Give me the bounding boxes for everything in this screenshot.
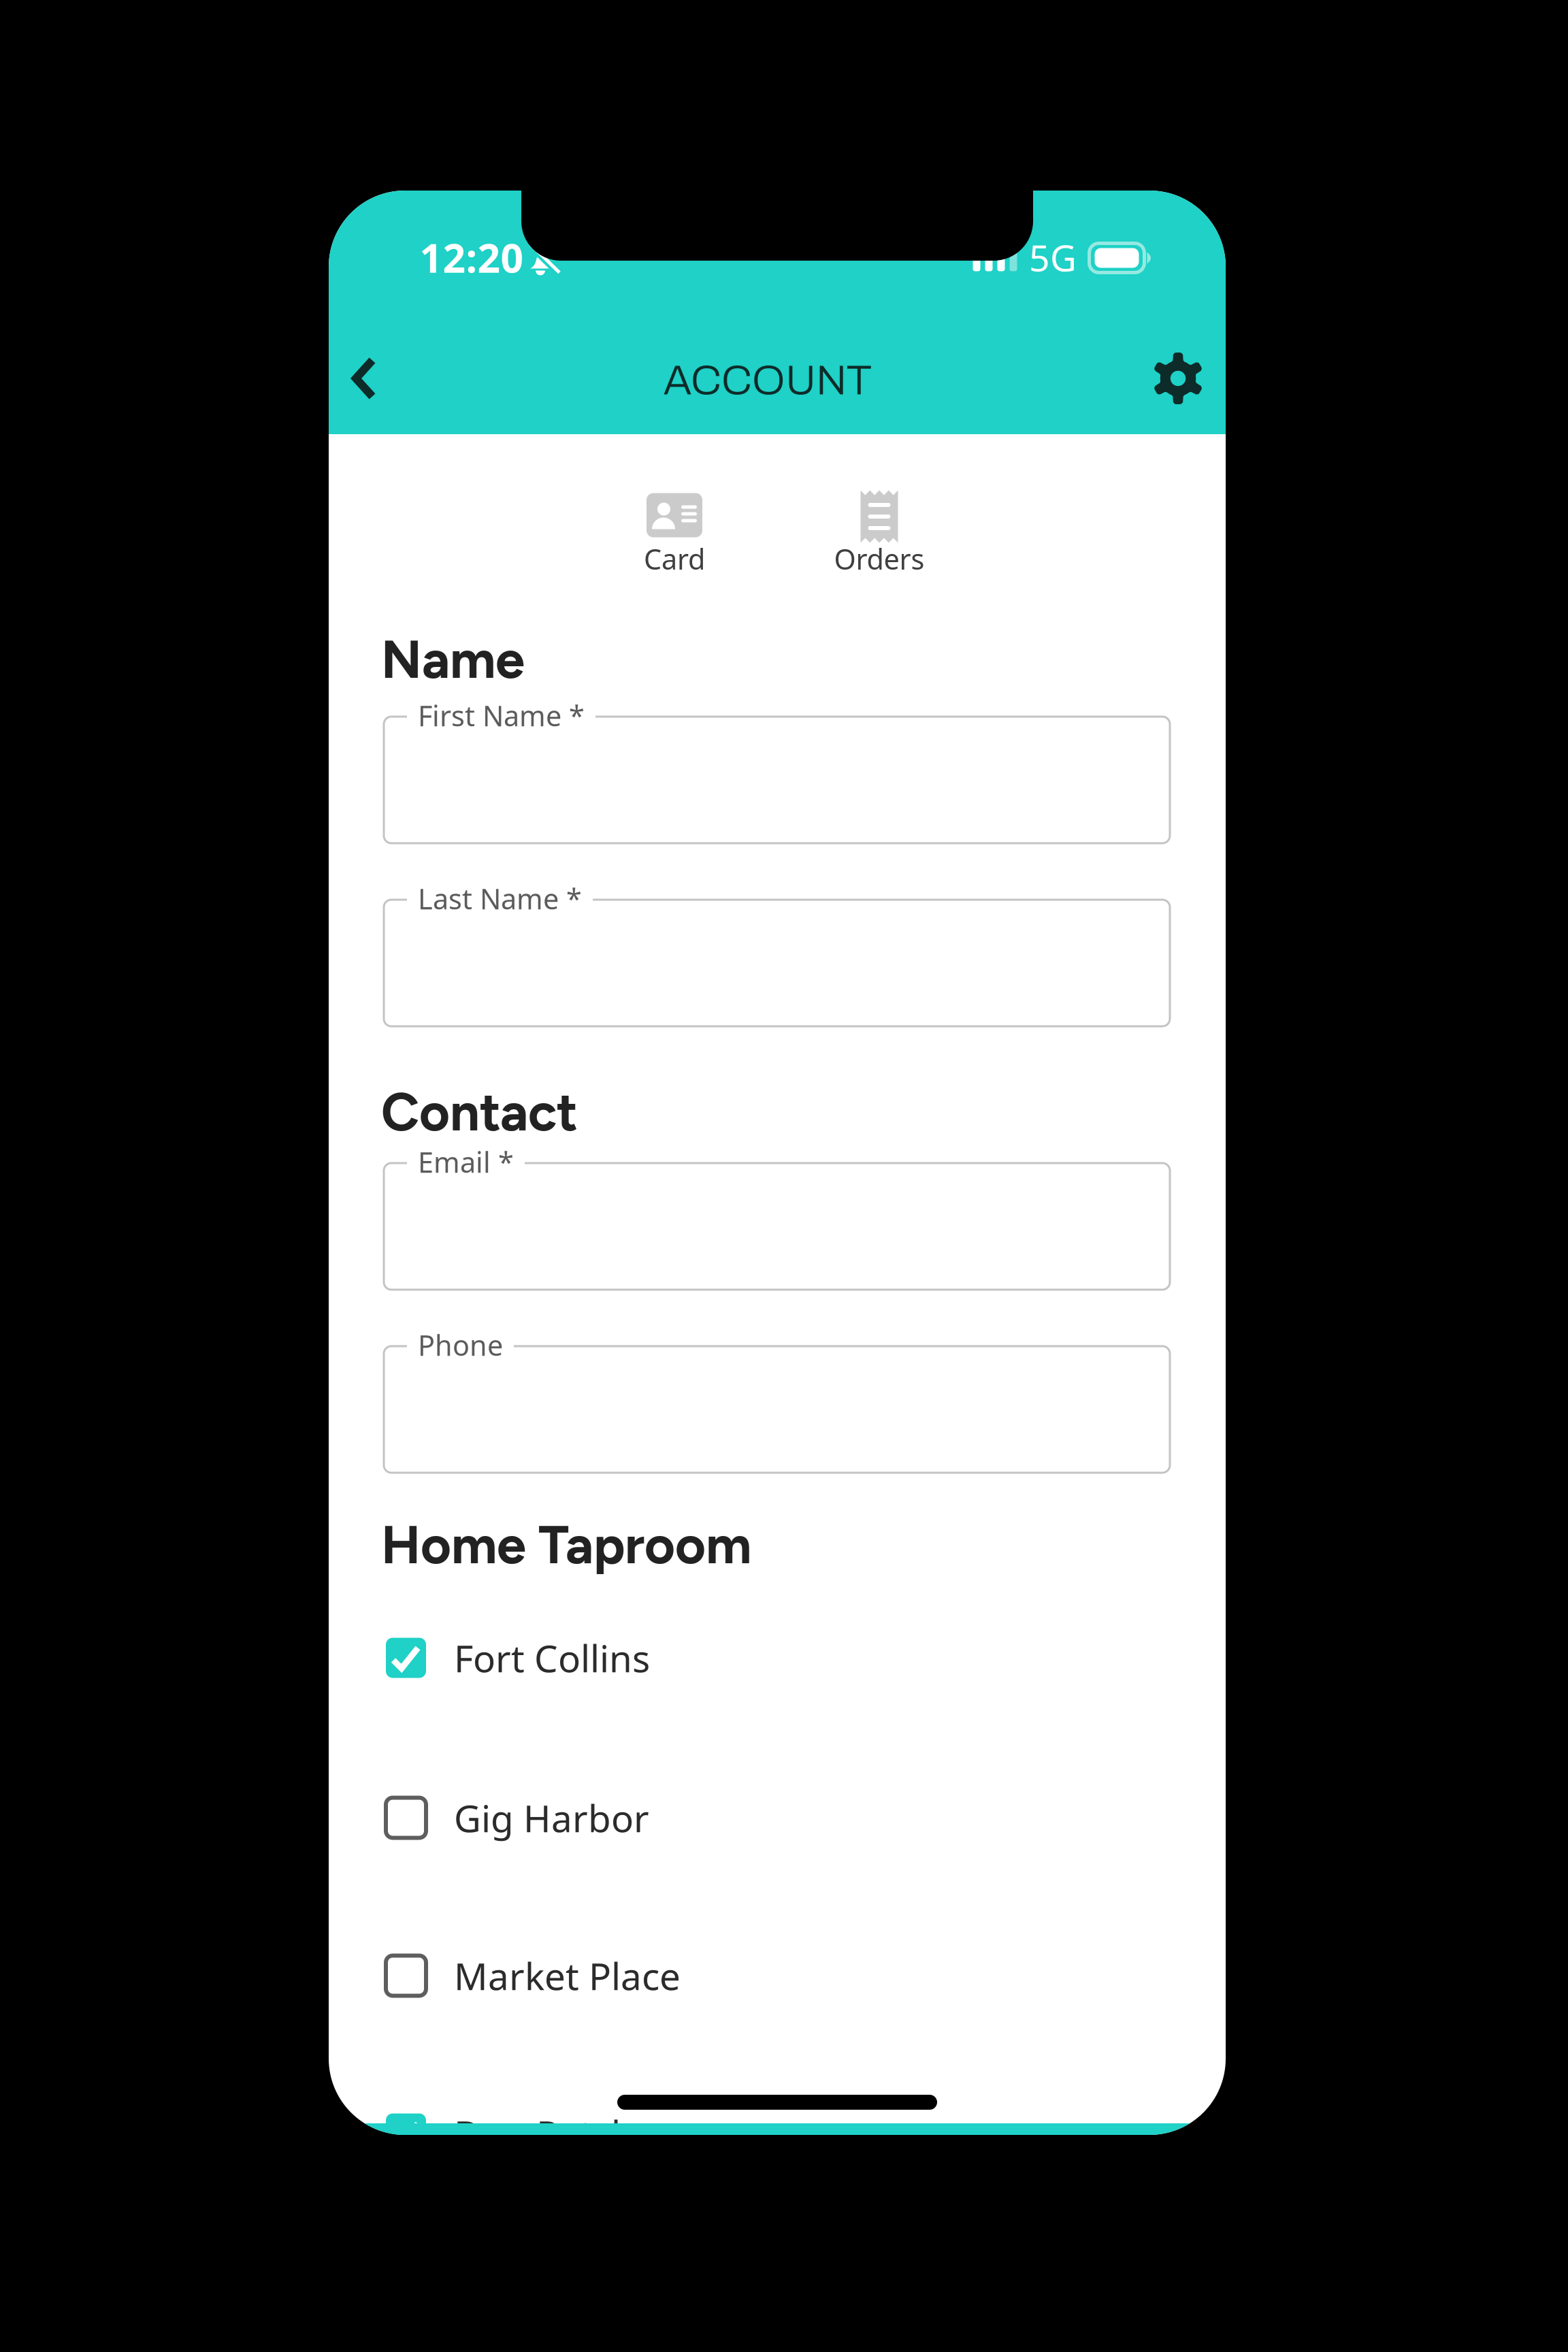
button[interactable]: Card: [610, 436, 739, 593]
button[interactable]: Settings: [1140, 343, 1216, 414]
staticText: Home Taproom: [381, 1513, 751, 1576]
staticText: 5G: [1029, 233, 1077, 282]
staticText: Dog Patch: [454, 2108, 634, 2159]
staticText: Market Place: [454, 1950, 681, 2001]
button[interactable]: Gig Harbor: [386, 1798, 862, 1838]
staticText: Phone: [418, 1326, 503, 1364]
staticText: Card: [644, 540, 705, 578]
staticText: Fort Collins: [454, 1633, 650, 1683]
button[interactable]: Fort Collins: [386, 1638, 862, 1678]
staticText: ACCOUNT: [664, 358, 872, 403]
button[interactable]: Back: [326, 343, 402, 414]
staticText: Orders: [834, 540, 925, 578]
staticText: 12:20: [420, 230, 524, 284]
staticText: Name: [381, 628, 525, 691]
button[interactable]: Orders: [815, 436, 944, 593]
staticText: Gig Harbor: [454, 1792, 649, 1843]
staticText: Email *: [418, 1143, 514, 1181]
staticText: First Name *: [418, 696, 585, 735]
staticText: Last Name *: [418, 879, 582, 918]
button[interactable]: Market Place: [386, 1956, 862, 1996]
staticText: Contact: [381, 1080, 578, 1144]
button[interactable]: Dog Patch: [386, 2113, 862, 2154]
